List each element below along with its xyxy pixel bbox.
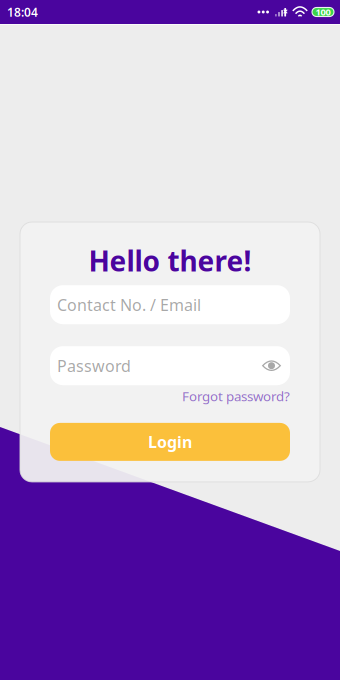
staticText: Forgot password? bbox=[182, 387, 290, 405]
staticText: Login bbox=[148, 431, 192, 452]
button[interactable]: Login bbox=[50, 423, 290, 461]
staticText: 100 bbox=[315, 6, 330, 18]
button[interactable]: Show password bbox=[262, 358, 281, 374]
staticText: Contact No. / Email bbox=[57, 294, 201, 315]
button[interactable]: Forgot password? bbox=[182, 387, 290, 405]
staticText: Password bbox=[57, 355, 131, 376]
button[interactable]: Password bbox=[50, 346, 290, 385]
staticText: 18:04 bbox=[7, 4, 38, 20]
staticText: Hello there! bbox=[88, 242, 251, 279]
button[interactable]: Contact No. / Email bbox=[50, 285, 290, 324]
